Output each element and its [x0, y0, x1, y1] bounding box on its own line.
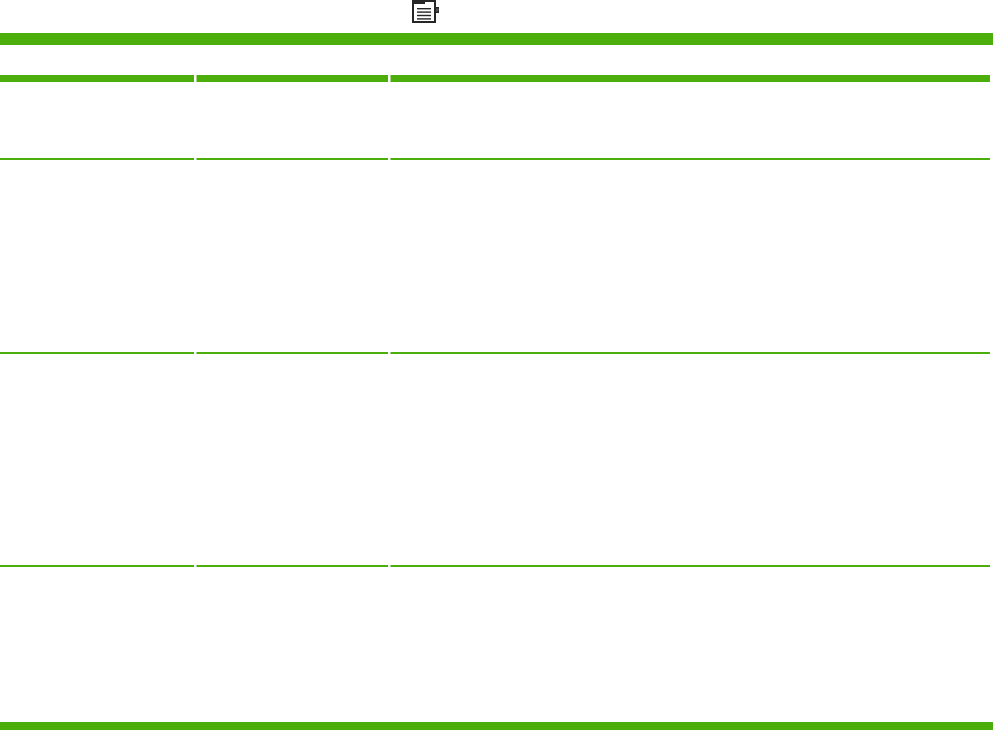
button[interactable]	[0, 352, 993, 565]
button[interactable]	[0, 565, 993, 722]
button[interactable]	[0, 158, 993, 352]
button[interactable]: Document	[411, 0, 441, 24]
